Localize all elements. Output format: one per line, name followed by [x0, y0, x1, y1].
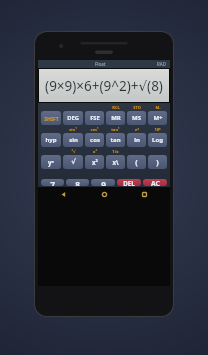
- staticText: Log: [152, 136, 163, 144]
- staticText: SHIFT: [44, 115, 59, 122]
- button[interactable]: yˣ: [41, 155, 61, 169]
- staticText: 8: [75, 179, 80, 186]
- staticText: ): [156, 157, 159, 167]
- button[interactable]: 7: [41, 179, 64, 186]
- staticText: tan¹: [111, 127, 120, 132]
- staticText: DEG: [67, 114, 79, 122]
- staticText: tan: [110, 136, 121, 144]
- button[interactable]: √: [63, 155, 83, 169]
- button[interactable]: AC: [143, 179, 167, 186]
- staticText: hyp: [45, 136, 57, 144]
- staticText: cos: [90, 136, 100, 144]
- staticText: ³√: [71, 149, 76, 154]
- staticText: Float: [95, 61, 106, 67]
- staticText: x²: [92, 158, 98, 166]
- staticText: (9×9)×6+(9^2)+√(8): [45, 77, 163, 95]
- button[interactable]: Log: [148, 133, 167, 147]
- staticText: M-: [155, 105, 161, 110]
- staticText: AC: [151, 179, 160, 186]
- staticText: 10ˣ: [154, 127, 161, 132]
- staticText: (: [135, 157, 138, 167]
- staticText: MR: [111, 114, 121, 122]
- button[interactable]: x\: [106, 155, 125, 169]
- staticText: RAD: [157, 61, 166, 67]
- staticText: DEL: [123, 179, 135, 186]
- staticText: sin: [69, 136, 78, 144]
- button[interactable]: SHIFT: [41, 111, 61, 125]
- button[interactable]: ): [148, 155, 167, 169]
- staticText: x³: [93, 149, 97, 154]
- button[interactable]: Recents: [139, 189, 150, 200]
- button[interactable]: Home: [99, 189, 110, 200]
- staticText: sin¹: [69, 127, 77, 132]
- button[interactable]: Back: [58, 189, 69, 200]
- button[interactable]: M+: [148, 111, 167, 125]
- button[interactable]: tan: [106, 133, 125, 147]
- button[interactable]: MR: [106, 111, 125, 125]
- button[interactable]: 8: [66, 179, 89, 186]
- button[interactable]: sin: [63, 133, 83, 147]
- staticText: eˣ: [135, 127, 139, 132]
- staticText: RCL: [112, 105, 120, 110]
- button[interactable]: MS: [127, 111, 146, 125]
- button[interactable]: 9: [91, 179, 115, 186]
- staticText: x\: [112, 158, 119, 166]
- staticText: M+: [153, 114, 163, 122]
- button[interactable]: (: [127, 155, 146, 169]
- staticText: cos¹: [90, 127, 99, 132]
- staticText: MS: [132, 114, 141, 122]
- button[interactable]: ln: [127, 133, 146, 147]
- staticText: STO: [133, 105, 141, 110]
- staticText: 7: [50, 179, 55, 186]
- staticText: √: [71, 158, 76, 166]
- button[interactable]: cos: [85, 133, 104, 147]
- staticText: 1/x: [112, 149, 119, 154]
- button[interactable]: DEG: [63, 111, 83, 125]
- button[interactable]: FSE: [85, 111, 104, 125]
- button[interactable]: DEL: [117, 179, 141, 186]
- staticText: ln: [134, 136, 140, 144]
- staticText: yˣ: [48, 158, 54, 166]
- staticText: FSE: [90, 114, 100, 122]
- button[interactable]: hyp: [41, 133, 61, 147]
- button[interactable]: x²: [85, 155, 104, 169]
- staticText: 9: [101, 179, 106, 186]
